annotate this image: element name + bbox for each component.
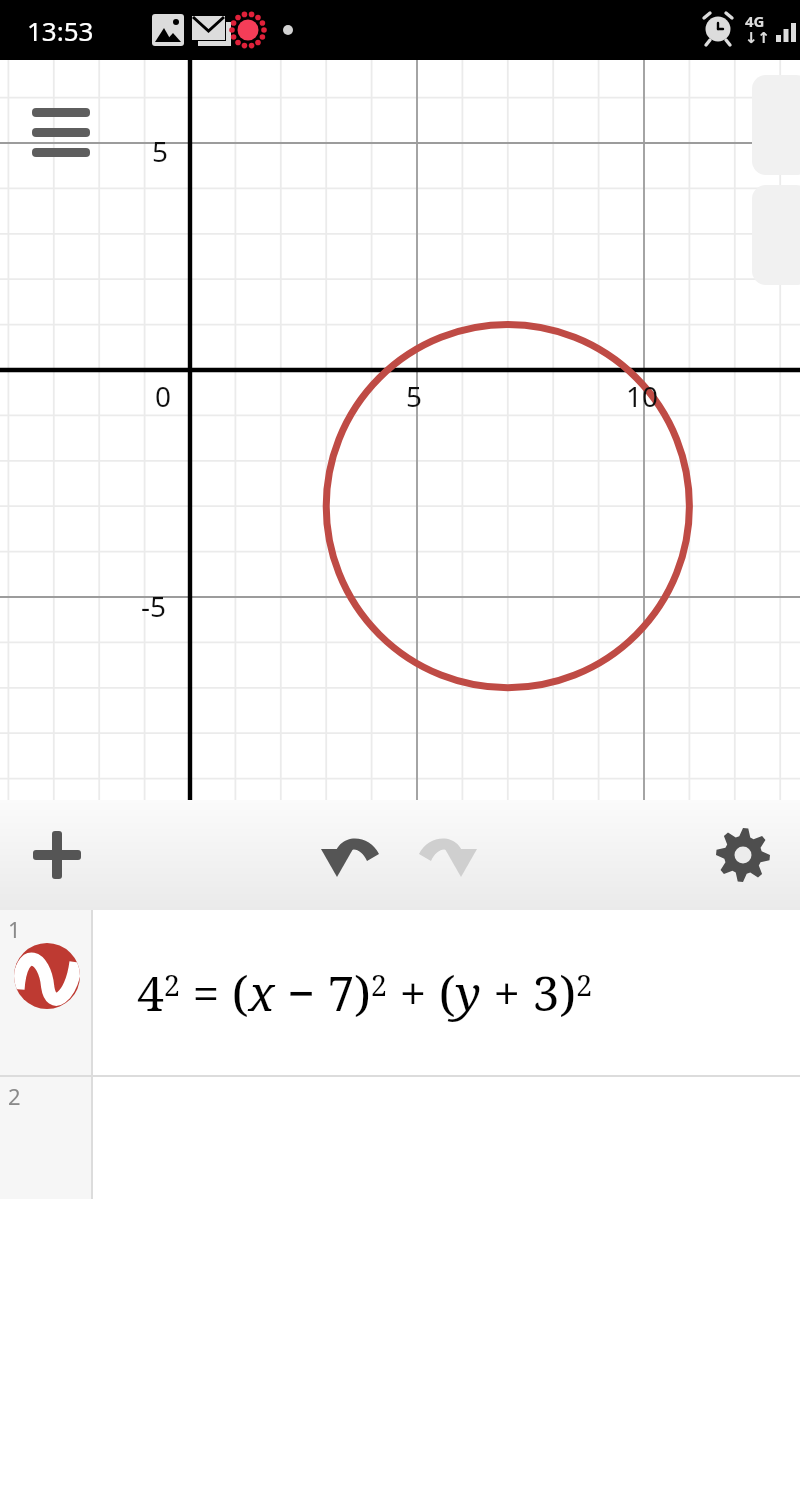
- staticText: 1: [8, 914, 21, 944]
- staticText: 10: [626, 377, 659, 415]
- staticText: -5: [141, 587, 167, 625]
- staticText: 0: [155, 377, 172, 415]
- staticText: ↓↑: [745, 29, 771, 46]
- button[interactable]: 2: [0, 1077, 800, 1199]
- button[interactable]: Redo: [405, 817, 481, 893]
- staticText: 5: [406, 377, 423, 415]
- button[interactable]: 1: [0, 910, 800, 1075]
- button[interactable]: Menu: [24, 90, 94, 152]
- staticText: 5: [152, 132, 169, 170]
- button[interactable]: Settings: [704, 816, 782, 894]
- staticText: 2: [8, 1081, 21, 1111]
- button[interactable]: Add expression: [18, 816, 96, 894]
- button[interactable]: Undo: [317, 817, 393, 893]
- staticText: 42 = (x − 7)2 + (y + 3)2: [137, 960, 593, 1025]
- staticText: 4G: [745, 11, 765, 31]
- staticText: 13:53: [27, 13, 94, 48]
